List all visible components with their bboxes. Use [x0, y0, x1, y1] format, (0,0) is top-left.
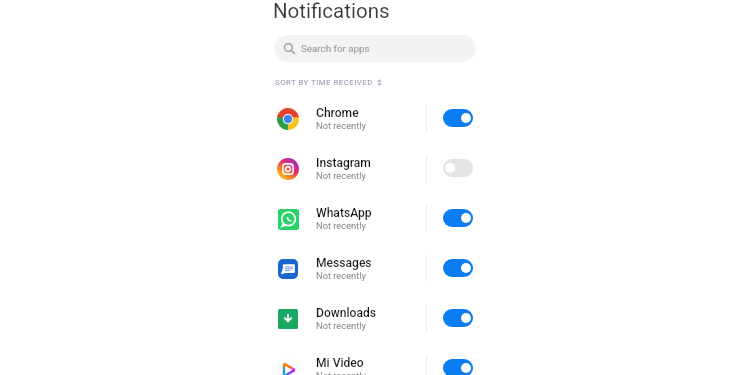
button[interactable]: Downloads — [269, 293, 481, 343]
button[interactable]: Instagram — [269, 143, 481, 193]
button[interactable]: Messages — [269, 243, 481, 293]
button[interactable]: Notifications on — [443, 309, 473, 327]
staticText: Not recently — [316, 170, 366, 181]
button[interactable]: Notifications on — [443, 359, 473, 375]
staticText: Chrome — [316, 106, 359, 120]
button[interactable]: Mi Video — [269, 343, 481, 375]
staticText: Search for apps — [301, 43, 370, 54]
staticText: Not recently — [316, 220, 366, 231]
staticText: Notifications — [273, 0, 390, 23]
staticText: Messages — [316, 256, 372, 270]
staticText: Not recently — [316, 270, 366, 281]
button[interactable]: Chrome — [269, 93, 481, 143]
staticText: SORT BY TIME RECEIVED — [275, 78, 373, 87]
button[interactable]: WhatsApp — [269, 193, 481, 243]
staticText: Instagram — [316, 156, 371, 170]
staticText: Not recently — [316, 120, 366, 131]
button[interactable]: SORT BY TIME RECEIVED — [275, 76, 384, 88]
staticText: Not recently — [316, 370, 366, 375]
button[interactable]: Notifications on — [443, 209, 473, 227]
staticText: WhatsApp — [316, 206, 372, 220]
staticText: Not recently — [316, 320, 366, 331]
button[interactable]: Notifications on — [443, 259, 473, 277]
button[interactable]: Search for apps — [274, 35, 476, 62]
staticText: Mi Video — [316, 356, 364, 370]
button[interactable]: Notifications on — [443, 109, 473, 127]
button[interactable]: Notifications off — [443, 159, 473, 177]
staticText: Downloads — [316, 306, 376, 320]
